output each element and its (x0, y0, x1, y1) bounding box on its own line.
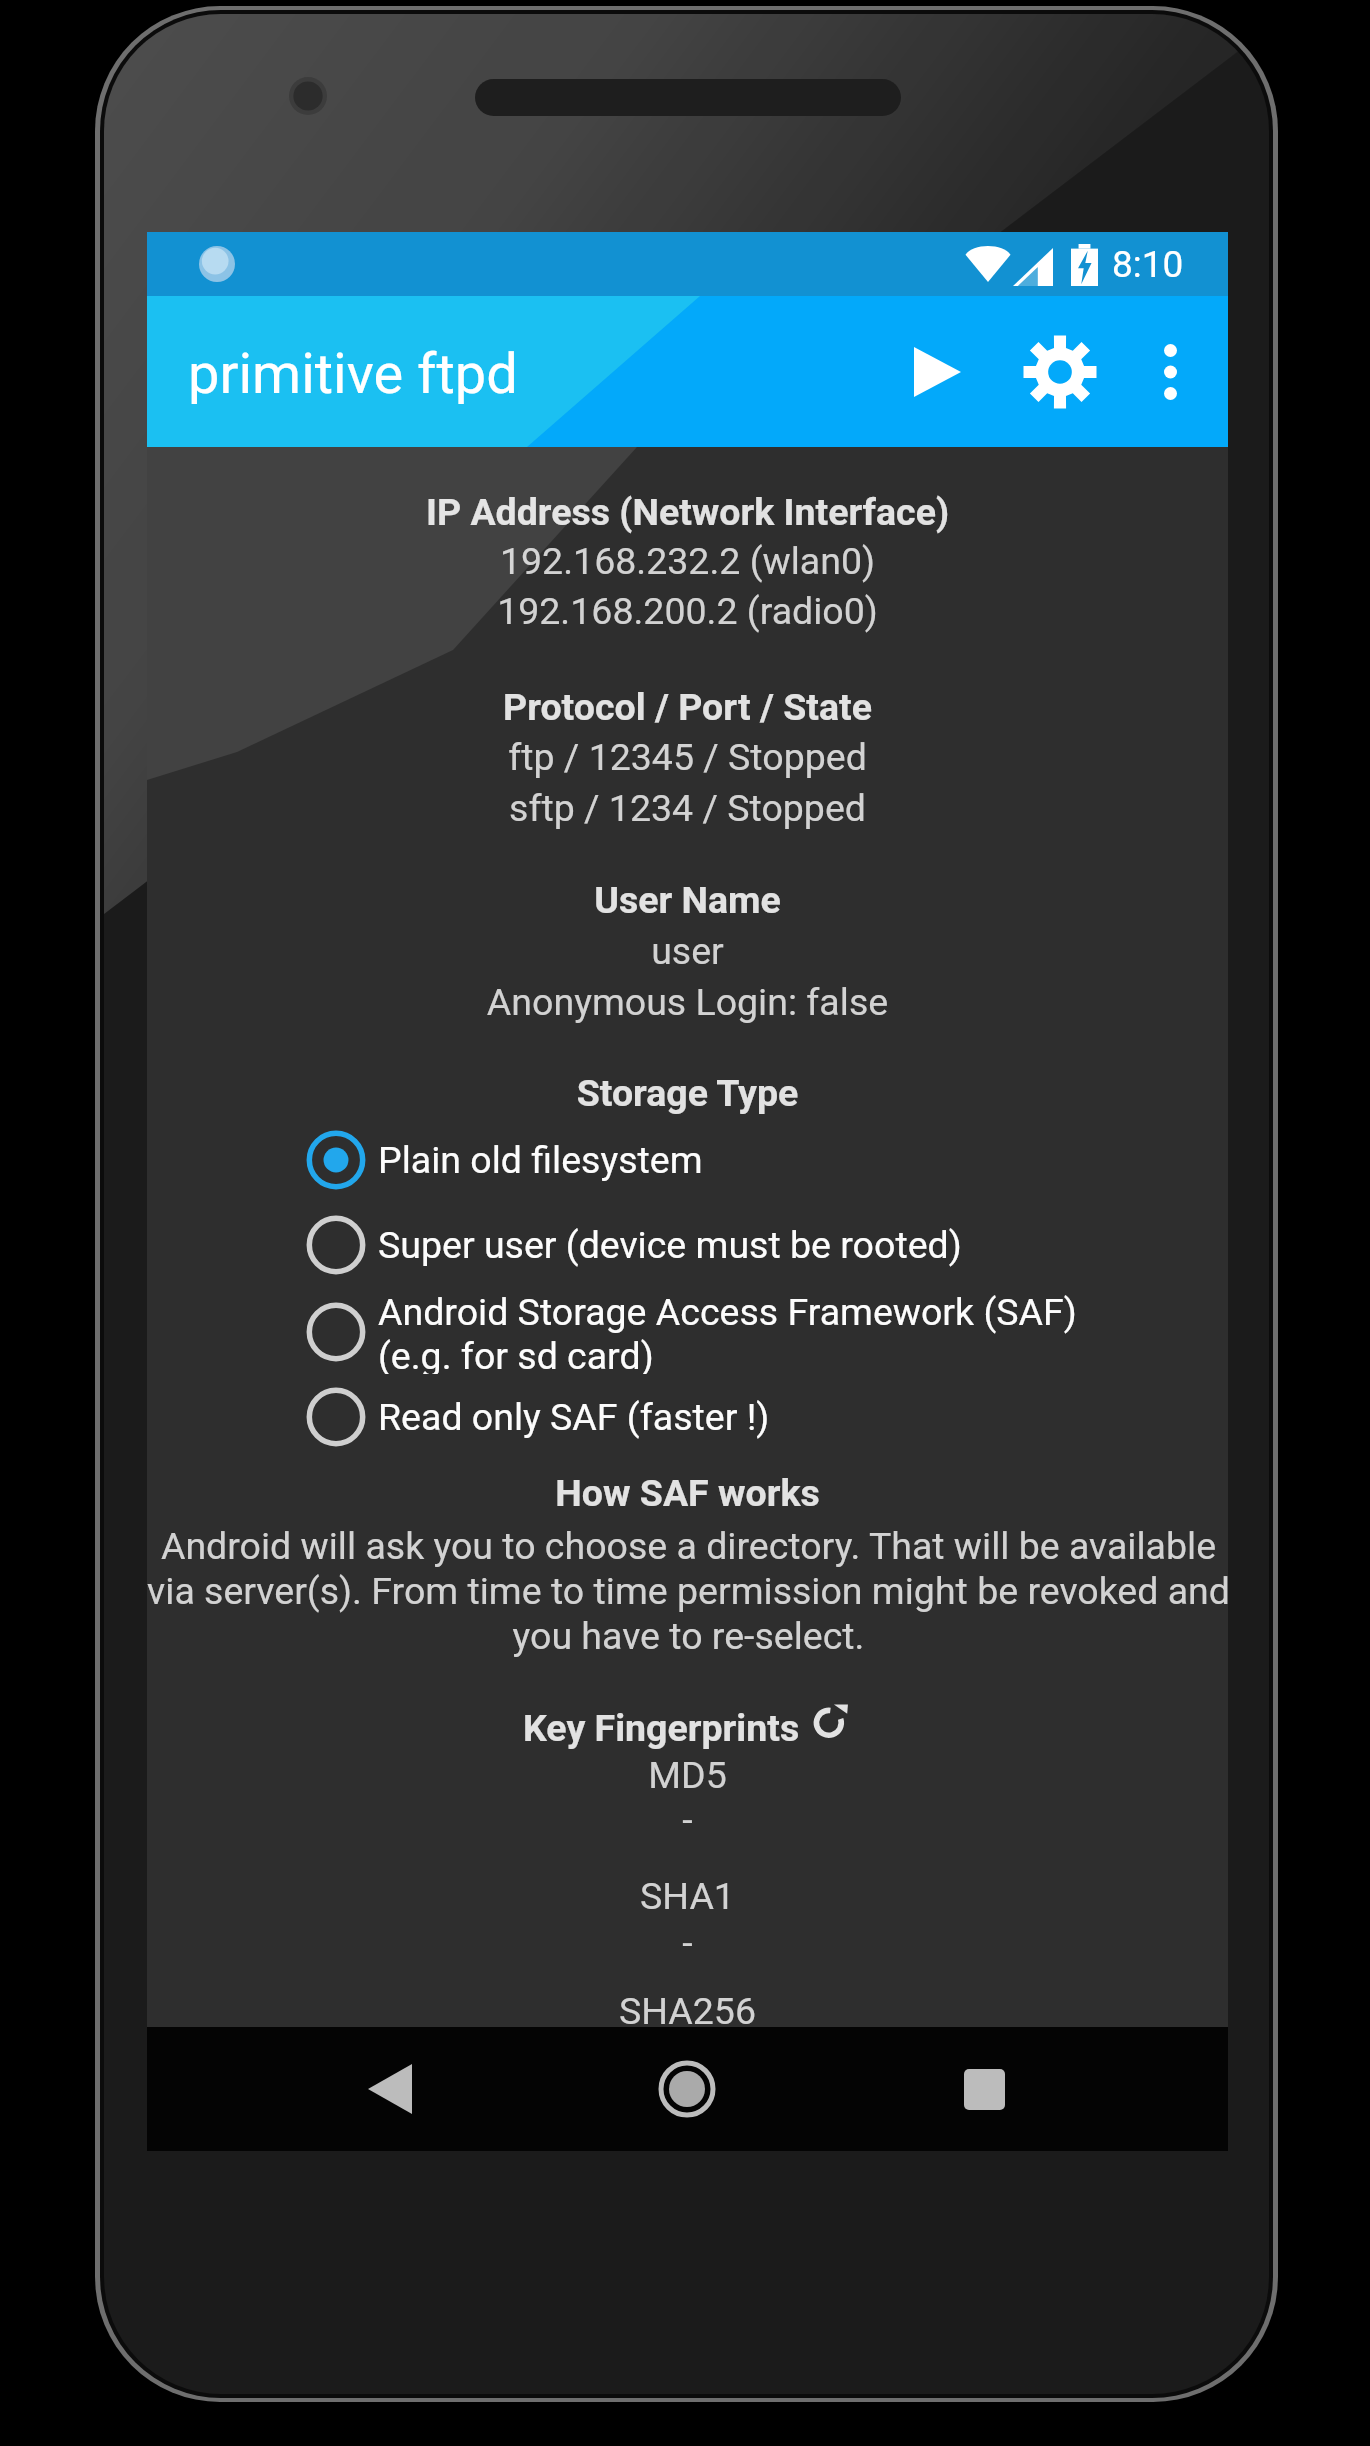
button[interactable]: Super user (device must be rooted) (147, 1203, 1228, 1287)
staticText: User Name (147, 878, 1228, 922)
staticText: SHA1 (147, 1874, 1228, 1918)
staticText: primitive ftpd (188, 341, 518, 407)
staticText: - (147, 1921, 1228, 1965)
staticText: 192.168.232.2 (wlan0) (147, 539, 1228, 583)
staticText: Android will ask you to choose a directo… (147, 1524, 1228, 1658)
button[interactable]: Refresh (809, 1699, 853, 1743)
staticText: MD5 (147, 1753, 1228, 1797)
staticText: Super user (device must be rooted) (378, 1223, 962, 1267)
button[interactable]: Back (240, 2027, 540, 2151)
staticText: 192.168.200.2 (radio0) (147, 589, 1228, 633)
staticText: IP Address (Network Interface) (147, 490, 1228, 534)
button[interactable]: Home (537, 2027, 837, 2151)
button[interactable]: More options (1125, 327, 1215, 417)
button[interactable]: Settings (1005, 317, 1115, 427)
button[interactable]: Start server (882, 317, 992, 427)
button[interactable]: Android Storage Access Framework (SAF) (… (147, 1290, 1228, 1374)
button[interactable]: Plain old filesystem (147, 1118, 1228, 1202)
staticText: Anonymous Login: false (147, 980, 1228, 1024)
staticText: user (147, 929, 1228, 973)
staticText: Protocol / Port / State (147, 685, 1228, 729)
staticText: Plain old filesystem (378, 1138, 703, 1182)
staticText: - (147, 1798, 1228, 1842)
staticText: Android Storage Access Framework (SAF) (… (378, 1290, 1077, 1374)
staticText: How SAF works (147, 1471, 1228, 1515)
staticText: Read only SAF (faster !) (378, 1395, 770, 1439)
button[interactable]: Recents (834, 2027, 1134, 2151)
staticText: sftp / 1234 / Stopped (147, 786, 1228, 830)
staticText: ftp / 12345 / Stopped (147, 735, 1228, 779)
button[interactable]: Read only SAF (faster !) (147, 1375, 1228, 1459)
staticText: Key Fingerprints (523, 1706, 800, 1750)
staticText: Storage Type (147, 1071, 1228, 1115)
staticText: 8:10 (1112, 243, 1184, 286)
staticText: SHA256 (147, 1989, 1228, 2033)
